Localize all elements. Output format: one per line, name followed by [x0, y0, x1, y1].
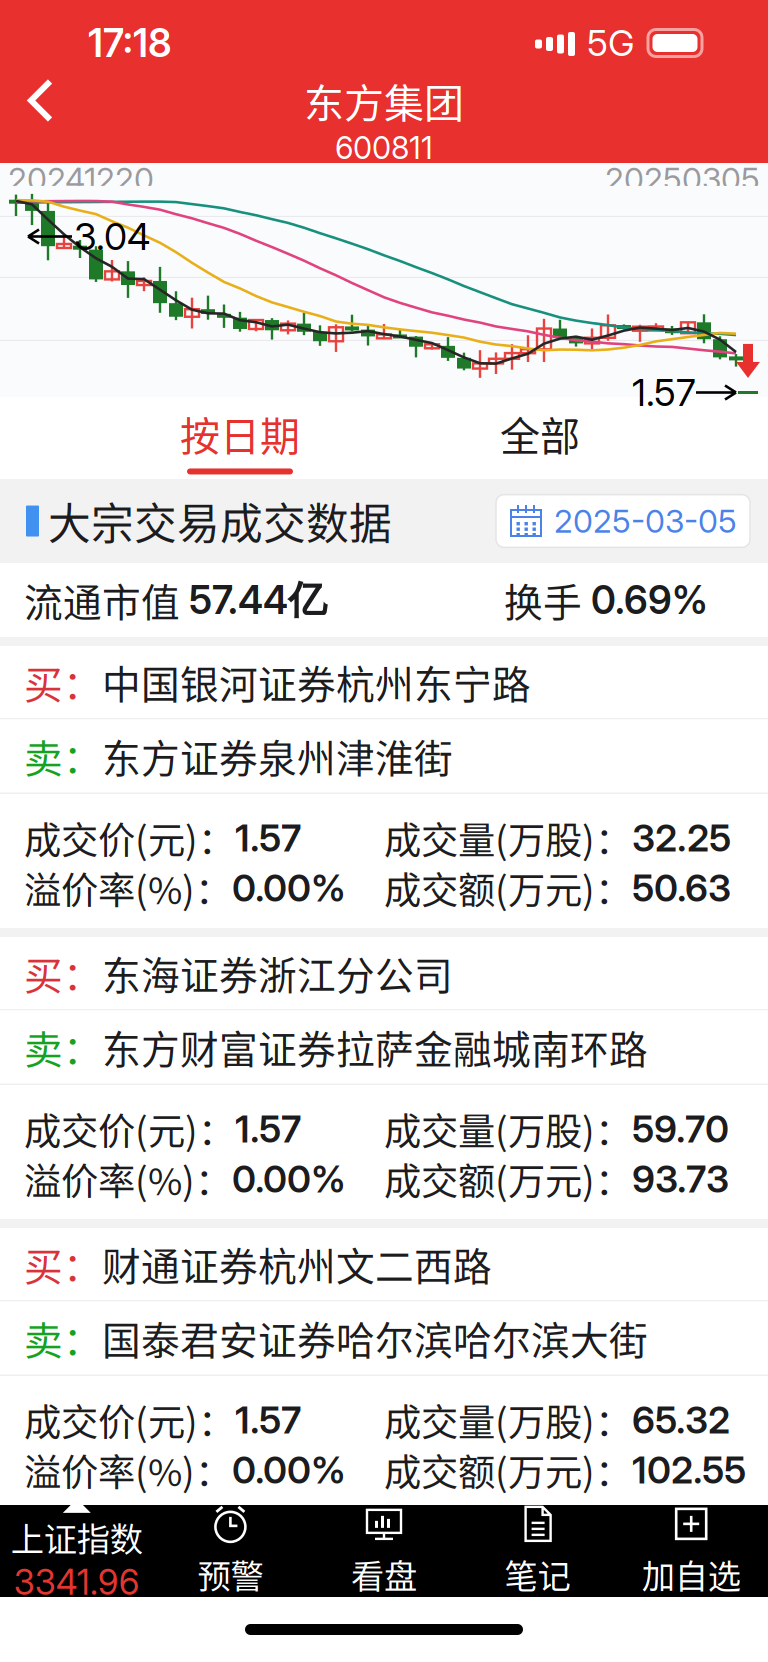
staticText: ：: [63, 654, 102, 710]
staticText: 东方集团: [304, 71, 464, 129]
button[interactable]: 按日期: [90, 406, 390, 479]
staticText: 3341.96: [14, 1561, 140, 1603]
staticText: 流通市值: [24, 572, 189, 628]
staticText: ：: [63, 728, 102, 784]
staticText: 上证指数: [11, 1513, 143, 1561]
staticText: ：: [595, 861, 632, 915]
staticText: 按日期: [180, 404, 300, 462]
staticText: 600811: [335, 129, 433, 166]
staticText: ：: [195, 861, 232, 915]
staticText: 59.70: [632, 1106, 729, 1152]
staticText: 东方财富证券拉萨金融城南环路: [102, 1019, 648, 1075]
staticText: 亿: [288, 576, 327, 624]
staticText: 溢价率(%): [24, 1152, 195, 1206]
staticText: 65.32: [632, 1397, 730, 1443]
staticText: 0.00%: [232, 1156, 346, 1202]
staticText: 成交价(元): [24, 1393, 198, 1447]
staticText: ：: [63, 1236, 102, 1292]
staticText: 0.00%: [232, 865, 346, 911]
staticText: 财通证券杭州文二西路: [102, 1236, 492, 1292]
staticText: 2025-03-05: [554, 502, 737, 540]
button[interactable]: 全部: [390, 406, 690, 479]
staticText: ：: [195, 1152, 232, 1206]
staticText: ：: [195, 1443, 232, 1497]
staticText: ：: [595, 1152, 632, 1206]
staticText: 笔记: [505, 1550, 571, 1598]
staticText: 换手: [504, 572, 591, 628]
staticText: 买: [24, 654, 63, 710]
staticText: 5G: [587, 21, 634, 65]
staticText: 成交额(万元): [384, 861, 595, 915]
staticText: 1.57: [235, 1106, 301, 1152]
staticText: 国泰君安证券哈尔滨哈尔滨大街: [102, 1310, 648, 1366]
staticText: 卖: [24, 1019, 63, 1075]
staticText: 成交量(万股): [384, 1393, 595, 1447]
staticText: 成交额(万元): [384, 1443, 595, 1497]
staticText: 102.55: [632, 1447, 746, 1493]
staticText: 全部: [500, 404, 580, 462]
staticText: 17:18: [88, 20, 172, 66]
staticText: 中国银河证券杭州东宁路: [102, 654, 531, 710]
button[interactable]: Back: [0, 70, 84, 147]
staticText: ：: [63, 1310, 102, 1366]
staticText: 溢价率(%): [24, 1443, 195, 1497]
staticText: ：: [63, 945, 102, 1001]
staticText: ：: [595, 811, 632, 865]
button[interactable]: 2025-03-05: [496, 495, 750, 547]
staticText: 大宗交易成交数据: [48, 490, 392, 552]
staticText: ：: [595, 1393, 632, 1447]
staticText: ：: [198, 1102, 235, 1156]
staticText: 卖: [24, 728, 63, 784]
button[interactable]: 加自选: [614, 1496, 768, 1606]
staticText: ：: [198, 1393, 235, 1447]
staticText: 0.00%: [232, 1447, 346, 1493]
staticText: ：: [198, 811, 235, 865]
staticText: 预警: [197, 1550, 263, 1598]
staticText: ：: [595, 1102, 632, 1156]
staticText: 成交量(万股): [384, 1102, 595, 1156]
staticText: ：: [595, 1443, 632, 1497]
button[interactable]: 预警: [154, 1496, 307, 1606]
staticText: 成交额(万元): [384, 1152, 595, 1206]
staticText: 卖: [24, 1310, 63, 1366]
staticText: 加自选: [642, 1550, 741, 1598]
button[interactable]: 上证指数: [0, 1499, 154, 1603]
staticText: 0.69%: [591, 577, 708, 623]
staticText: 57.44: [189, 577, 288, 623]
staticText: 看盘: [351, 1550, 417, 1598]
staticText: 成交价(元): [24, 811, 198, 865]
staticText: 93.73: [632, 1156, 729, 1202]
staticText: 成交价(元): [24, 1102, 198, 1156]
staticText: 50.63: [632, 865, 731, 911]
staticText: 32.25: [632, 815, 731, 861]
staticText: 买: [24, 945, 63, 1001]
staticText: 东海证券浙江分公司: [102, 945, 453, 1001]
button[interactable]: 看盘: [307, 1496, 461, 1606]
staticText: 20241220: [8, 160, 154, 198]
staticText: 1.57: [632, 370, 696, 415]
staticText: 1.57: [235, 1397, 301, 1443]
staticText: 1.57: [235, 815, 301, 861]
button[interactable]: 笔记: [461, 1496, 614, 1606]
staticText: 20250305: [605, 160, 760, 198]
staticText: 3.04: [74, 214, 150, 259]
staticText: 东方证券泉州津淮街: [102, 728, 453, 784]
staticText: 买: [24, 1236, 63, 1292]
staticText: ：: [63, 1019, 102, 1075]
staticText: 溢价率(%): [24, 861, 195, 915]
staticText: 成交量(万股): [384, 811, 595, 865]
